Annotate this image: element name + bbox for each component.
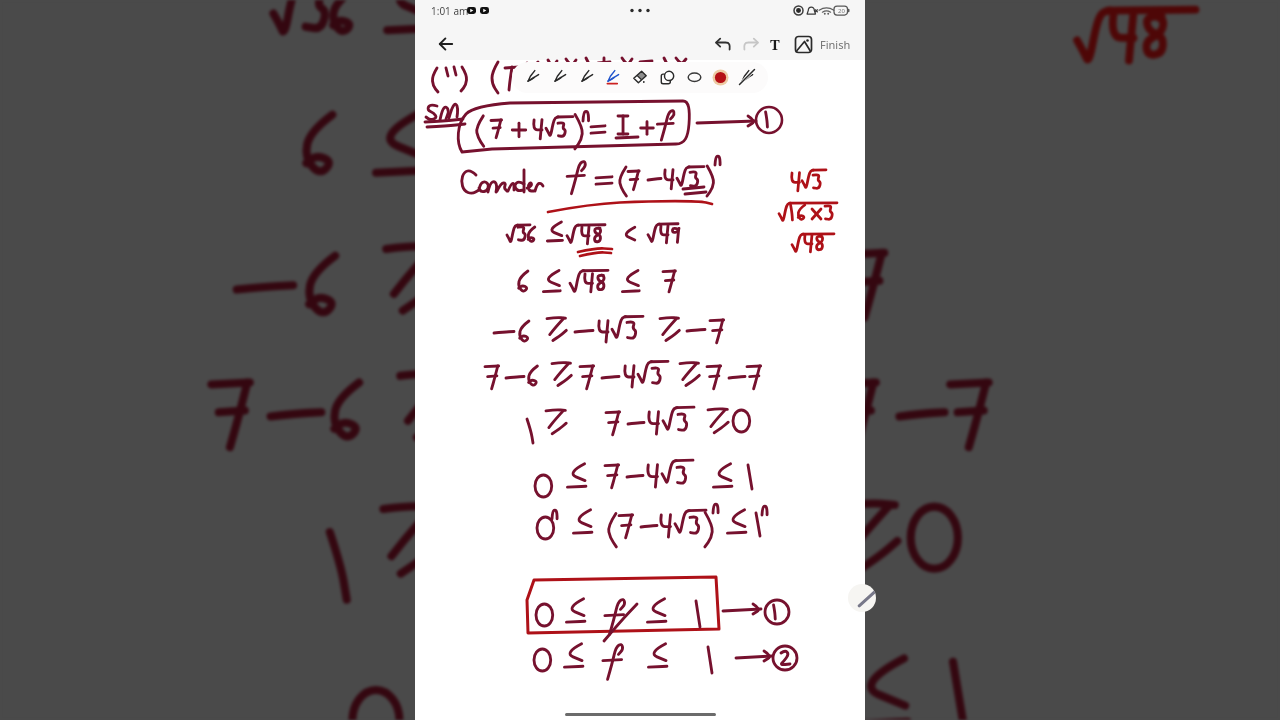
button[interactable]: Text tool bbox=[762, 28, 788, 60]
staticText: 1:01 am bbox=[431, 4, 469, 18]
button[interactable]: Stylus settings bbox=[848, 584, 876, 612]
staticText: 20 bbox=[838, 7, 845, 15]
button[interactable]: Shape bbox=[681, 62, 707, 93]
button[interactable]: Finish bbox=[817, 28, 853, 60]
button[interactable]: Note drawing canvas bbox=[415, 60, 865, 720]
button[interactable]: Insert image bbox=[789, 28, 817, 60]
button[interactable]: Highlighter bbox=[600, 62, 626, 93]
button[interactable]: Redo bbox=[737, 28, 765, 60]
button[interactable]: Pen 3 bbox=[574, 62, 600, 93]
button[interactable]: Pen 2 bbox=[547, 62, 573, 93]
button[interactable]: Colour bbox=[707, 62, 733, 93]
button[interactable]: Eraser bbox=[627, 62, 653, 93]
button[interactable]: Pen 1 bbox=[520, 62, 546, 93]
staticText: T bbox=[770, 34, 780, 54]
staticText: Finish bbox=[820, 37, 851, 52]
button[interactable]: Disable drawing bbox=[734, 62, 760, 93]
button[interactable]: Back bbox=[431, 28, 461, 60]
button[interactable]: Lasso select bbox=[654, 62, 680, 93]
button[interactable]: Undo bbox=[709, 28, 737, 60]
